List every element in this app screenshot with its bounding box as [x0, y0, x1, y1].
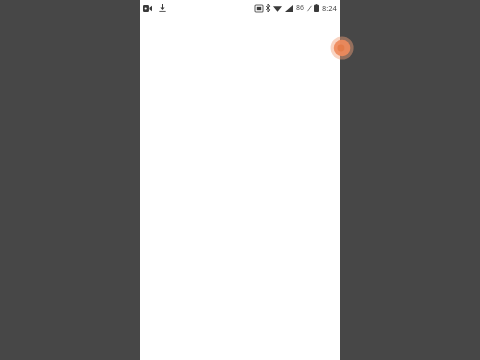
- button[interactable]: Accent action: [332, 36, 340, 60]
- staticText: 8:24: [322, 3, 337, 13]
- staticText: 86: [296, 3, 305, 13]
